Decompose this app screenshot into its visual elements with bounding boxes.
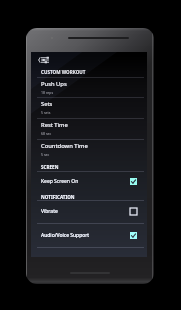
button[interactable]: Keep Screen On xyxy=(31,171,147,192)
staticText: 5 sec xyxy=(41,152,50,157)
button[interactable]: Rest Time xyxy=(31,118,147,139)
button[interactable]: Audio/Voice Support xyxy=(31,223,147,247)
button[interactable]: Vibrate xyxy=(31,200,147,223)
staticText: 68 sec xyxy=(41,131,52,136)
button[interactable]: Countdown Time xyxy=(31,139,147,160)
staticText: Push Ups xyxy=(41,80,67,88)
button[interactable]: Navigate up xyxy=(35,53,51,66)
staticText: Countdown Time xyxy=(41,142,88,150)
staticText: 18 reps xyxy=(41,90,54,95)
staticText: SCREEN xyxy=(41,164,59,170)
button[interactable]: Push Ups xyxy=(31,77,147,97)
staticText: Keep Screen On xyxy=(41,178,79,185)
staticText: Sets xyxy=(41,100,53,108)
button[interactable]: Sets xyxy=(31,97,147,118)
staticText: Vibrate xyxy=(41,208,58,215)
staticText: NOTIFICATION xyxy=(41,194,75,200)
staticText: 5 sets xyxy=(41,110,51,115)
staticText: CUSTOM WORKOUT xyxy=(41,69,86,75)
staticText: Rest Time xyxy=(41,121,68,129)
staticText: Audio/Voice Support xyxy=(41,232,90,239)
